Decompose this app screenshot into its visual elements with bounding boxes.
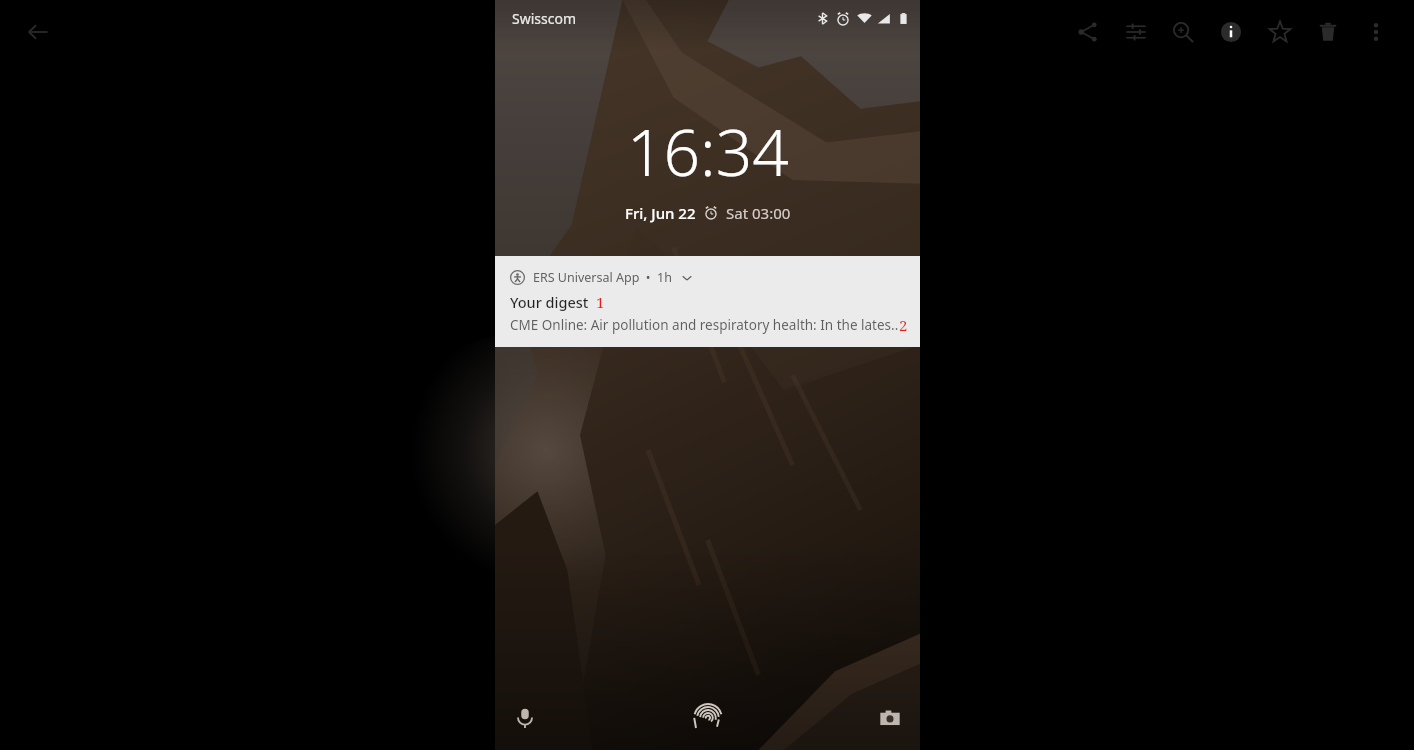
button[interactable]: Favourite: [1256, 8, 1304, 56]
button[interactable]: Fingerprint unlock: [682, 690, 734, 742]
button[interactable]: ERS Universal App • 1h: [495, 256, 920, 347]
staticText: ERS Universal App • 1h: [533, 269, 672, 286]
button[interactable]: More options: [1352, 8, 1400, 56]
button[interactable]: Back: [14, 8, 62, 56]
staticText: Fri, Jun 22: [625, 203, 696, 223]
button[interactable]: Details: [1207, 8, 1255, 56]
button[interactable]: Voice assistant: [501, 694, 549, 742]
staticText: Sat 03:00: [726, 203, 791, 223]
button[interactable]: Zoom: [1159, 8, 1207, 56]
button[interactable]: Camera: [866, 694, 914, 742]
button[interactable]: Expand notification: [679, 270, 695, 286]
staticText: 2: [899, 315, 908, 335]
button[interactable]: Delete: [1304, 8, 1352, 56]
staticText: Your digest: [510, 292, 589, 312]
staticText: CME Online: Air pollution and respirator…: [510, 316, 899, 334]
button[interactable]: Adjust: [1112, 8, 1160, 56]
button[interactable]: Share: [1064, 8, 1112, 56]
staticText: 1: [596, 292, 605, 312]
staticText: 16:34: [627, 108, 789, 195]
staticText: Swisscom: [512, 9, 576, 28]
